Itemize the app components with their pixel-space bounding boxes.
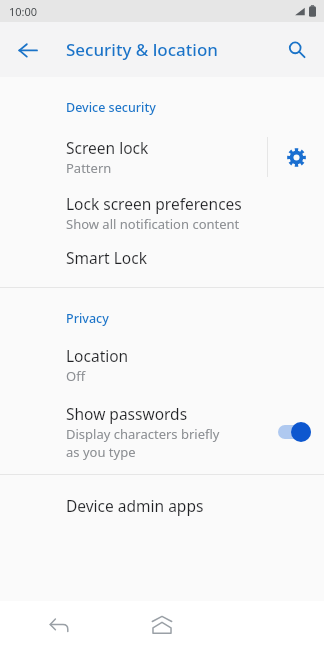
staticText: as you type: [66, 443, 136, 461]
button[interactable]: Location: [0, 345, 324, 385]
staticText: Pattern: [66, 159, 112, 177]
staticText: Location: [66, 345, 129, 366]
button[interactable]: Back: [41, 607, 77, 643]
staticText: Device security: [66, 99, 324, 116]
button[interactable]: Screen lock settings: [268, 131, 324, 183]
staticText: Off: [66, 367, 86, 385]
button[interactable]: Smart Lock: [0, 247, 324, 268]
button[interactable]: Device admin apps: [0, 495, 324, 516]
button[interactable]: Screen lock: [0, 131, 267, 183]
staticText: Device admin apps: [66, 495, 204, 516]
button[interactable]: Search: [277, 30, 317, 70]
staticText: Privacy: [66, 310, 324, 327]
staticText: Show passwords: [66, 403, 188, 424]
button[interactable]: Navigate up: [8, 30, 48, 70]
staticText: Display characters briefly: [66, 425, 220, 443]
staticText: Show all notification content: [66, 215, 240, 233]
button[interactable]: Lock screen preferences: [0, 193, 324, 233]
staticText: Screen lock: [66, 137, 149, 158]
staticText: Smart Lock: [66, 247, 147, 268]
button[interactable]: Home: [144, 607, 180, 643]
staticText: Security & location: [66, 38, 218, 61]
button[interactable]: Show passwords: [0, 403, 324, 461]
staticText: 10:00: [9, 4, 38, 19]
staticText: Lock screen preferences: [66, 193, 242, 214]
